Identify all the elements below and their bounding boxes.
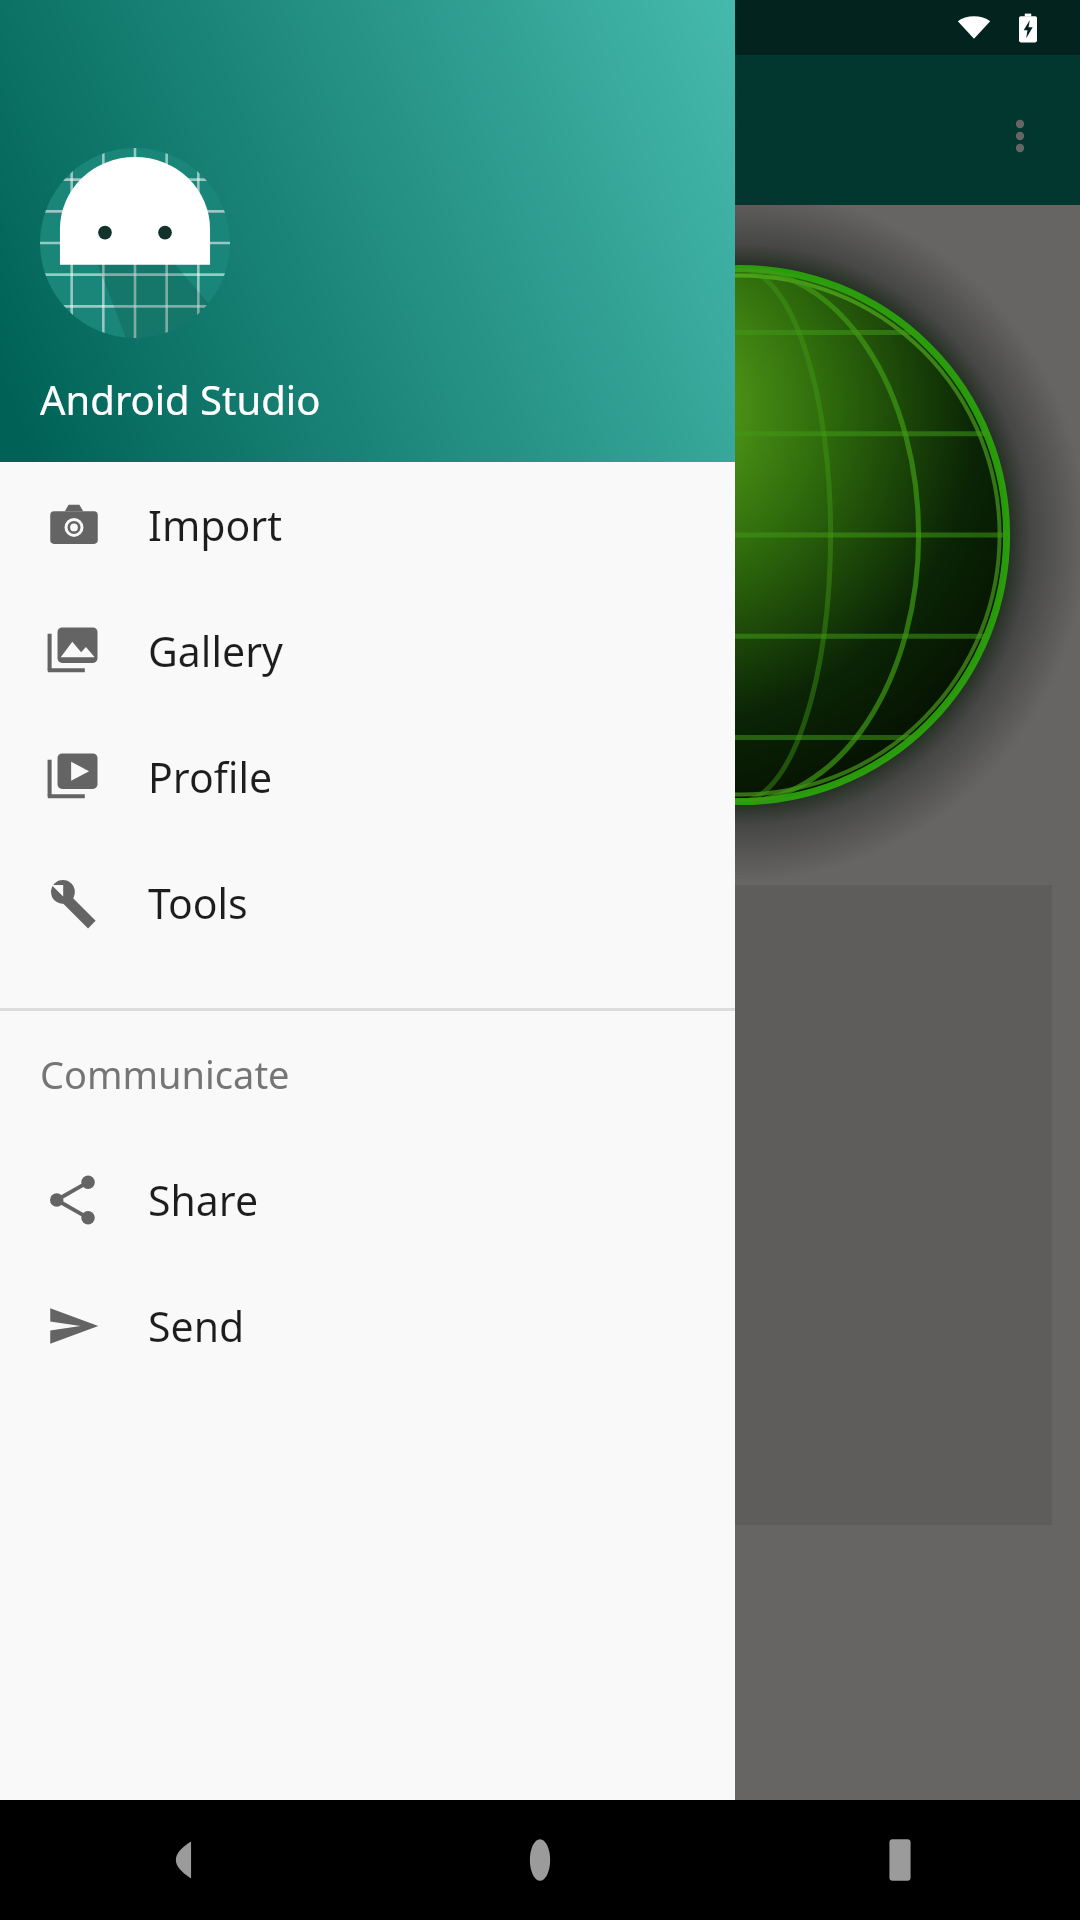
button[interactable]: Import bbox=[0, 462, 735, 588]
staticText: Android Studio bbox=[40, 372, 321, 426]
button[interactable] bbox=[0, 885, 1052, 1525]
button[interactable]: Android Studio bbox=[0, 0, 735, 462]
button[interactable]: Home bbox=[360, 1800, 720, 1920]
button[interactable]: Back bbox=[0, 1800, 360, 1920]
button[interactable]: More options bbox=[972, 88, 1068, 184]
button[interactable]: Share bbox=[0, 1137, 735, 1263]
button[interactable]: Tools bbox=[0, 840, 735, 966]
staticText: Import bbox=[148, 497, 282, 553]
staticText: Communicate bbox=[40, 1048, 290, 1100]
button[interactable]: Profile bbox=[0, 714, 735, 840]
staticText: Tools bbox=[148, 875, 248, 931]
staticText: Send bbox=[148, 1298, 245, 1354]
button[interactable]: Gallery bbox=[0, 588, 735, 714]
staticText: Profile bbox=[148, 749, 273, 805]
button[interactable]: Send bbox=[0, 1263, 735, 1389]
staticText: Share bbox=[148, 1172, 259, 1228]
button[interactable]: Recent apps bbox=[720, 1800, 1080, 1920]
staticText: Gallery bbox=[148, 623, 283, 679]
